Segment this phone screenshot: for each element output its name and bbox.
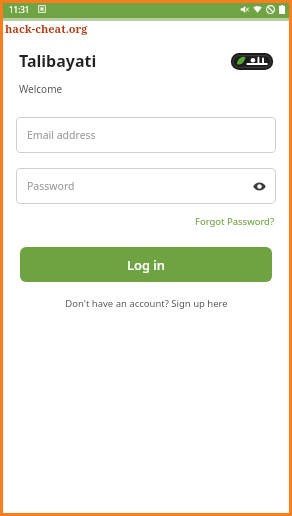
button[interactable]: Don't have an account? Sign up here (0, 297, 292, 310)
staticText: 11:31 (9, 4, 30, 15)
other: Wi-Fi (253, 5, 262, 14)
button[interactable]: Email address (16, 117, 276, 153)
other: Do not disturb (266, 5, 275, 14)
button[interactable]: Forgot Password? (195, 213, 292, 230)
staticText: Talibayati (19, 50, 97, 72)
button[interactable]: Password (16, 168, 276, 204)
staticText: hack-cheat.org (5, 21, 88, 36)
button[interactable]: Show password (250, 177, 268, 195)
other: Silent mode (240, 5, 249, 14)
other: Battery (279, 5, 285, 14)
button[interactable]: Log in (20, 247, 272, 282)
staticText: Email address (27, 128, 96, 142)
staticText: Password (27, 179, 75, 193)
other: Talibayati logo (229, 51, 275, 72)
staticText: Welcome (19, 82, 63, 96)
staticText: Log in (127, 256, 165, 274)
staticText: Don't have an account? Sign up here (65, 297, 228, 310)
staticText: Forgot Password? (195, 215, 275, 228)
